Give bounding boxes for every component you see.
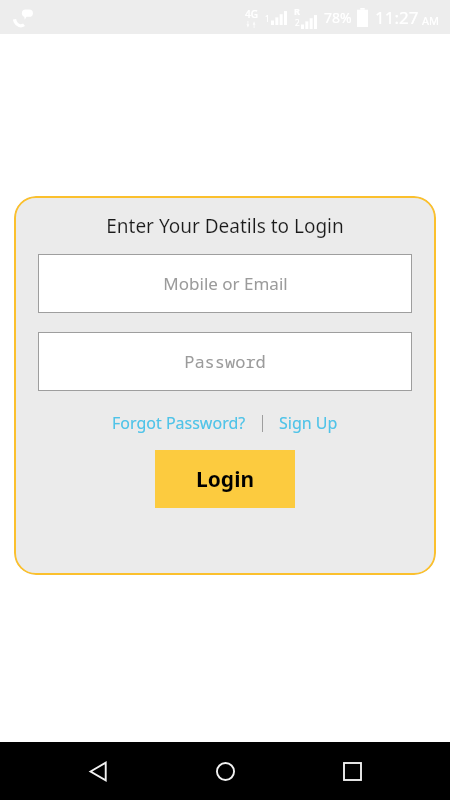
staticText: Forgot Password?: [112, 412, 246, 434]
staticText: Password: [184, 350, 266, 373]
button[interactable]: Mobile or Email: [38, 254, 412, 313]
staticText: Enter Your Deatils to Login: [106, 213, 344, 239]
staticText: 78%: [324, 8, 352, 27]
button[interactable]: Home: [196, 742, 254, 800]
button[interactable]: Login: [155, 450, 295, 508]
button[interactable]: Forgot Password?: [110, 408, 248, 438]
staticText: Sign Up: [279, 412, 338, 434]
button[interactable]: Password: [38, 332, 412, 391]
button[interactable]: Sign Up: [277, 408, 340, 438]
staticText: Login: [196, 465, 255, 494]
button[interactable]: Back: [69, 742, 127, 800]
staticText: R: [294, 5, 300, 17]
staticText: 11:27: [375, 6, 419, 29]
staticText: AM: [422, 13, 440, 28]
staticText: 4G: [245, 7, 258, 21]
staticText: 2: [295, 17, 300, 28]
staticText: 1: [265, 13, 270, 24]
staticText: Mobile or Email: [163, 272, 288, 295]
button[interactable]: Recent apps: [323, 742, 381, 800]
